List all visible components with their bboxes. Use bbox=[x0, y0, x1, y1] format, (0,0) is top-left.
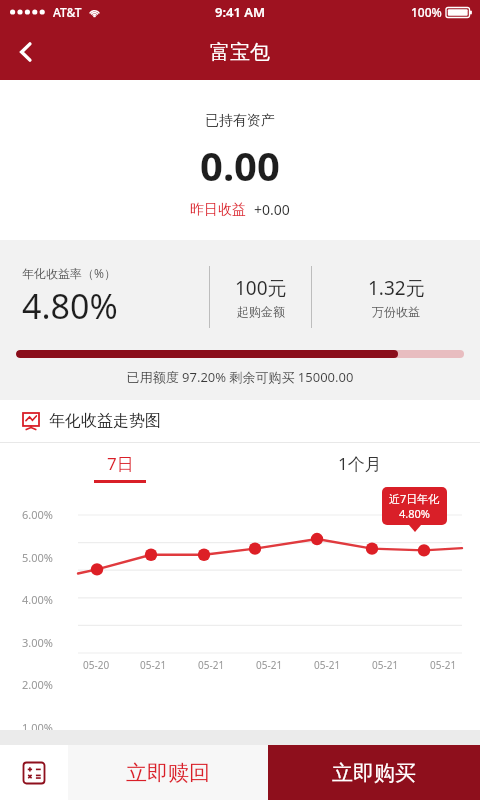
staticText: 4.80% bbox=[399, 506, 430, 521]
staticText: 100元 bbox=[235, 275, 287, 301]
staticText: 起购金额 bbox=[237, 304, 285, 319]
staticText: 已持有资产 bbox=[205, 112, 275, 130]
staticText: AT&T bbox=[53, 4, 82, 20]
staticText: 近7日年化 bbox=[389, 491, 440, 506]
staticText: 05-21 bbox=[198, 658, 225, 672]
staticText: +0.00 bbox=[254, 200, 290, 219]
staticText: 立即购买 bbox=[332, 760, 416, 786]
button[interactable]: 1个月 bbox=[240, 443, 480, 491]
button[interactable]: 立即购买 bbox=[268, 745, 480, 800]
staticText: 05-20 bbox=[83, 658, 110, 672]
staticText: 昨日收益 bbox=[190, 201, 246, 219]
staticText: 3.00% bbox=[22, 635, 53, 650]
staticText: 1个月 bbox=[338, 452, 382, 475]
staticText: 05-21 bbox=[314, 658, 341, 672]
button[interactable]: Back bbox=[0, 26, 52, 78]
staticText: 4.00% bbox=[22, 592, 53, 607]
staticText: 7日 bbox=[107, 452, 134, 475]
button[interactable]: 立即赎回 bbox=[68, 745, 268, 800]
button[interactable]: 7日 bbox=[0, 443, 240, 491]
staticText: 100% bbox=[411, 4, 442, 20]
staticText: 5.00% bbox=[22, 550, 53, 565]
staticText: 已用额度 97.20% 剩余可购买 15000.00 bbox=[0, 368, 480, 386]
staticText: 6.00% bbox=[22, 507, 53, 522]
staticText: 1.32元 bbox=[368, 275, 425, 301]
staticText: 05-21 bbox=[372, 658, 399, 672]
staticText: 立即赎回 bbox=[126, 760, 210, 786]
staticText: 1.00% bbox=[22, 720, 53, 735]
staticText: 富宝包 bbox=[210, 40, 270, 65]
staticText: 0.00 bbox=[200, 138, 280, 192]
button[interactable]: Calculator bbox=[0, 745, 68, 800]
staticText: 4.80% bbox=[22, 283, 118, 329]
staticText: 05-21 bbox=[430, 658, 457, 672]
staticText: 9:41 AM bbox=[215, 3, 266, 21]
staticText: 万份收益 bbox=[372, 304, 420, 319]
staticText: 2.00% bbox=[22, 677, 53, 692]
staticText: 年化收益率（%） bbox=[22, 265, 116, 281]
staticText: 05-21 bbox=[256, 658, 283, 672]
staticText: 05-21 bbox=[140, 658, 167, 672]
staticText: 年化收益走势图 bbox=[49, 411, 161, 431]
